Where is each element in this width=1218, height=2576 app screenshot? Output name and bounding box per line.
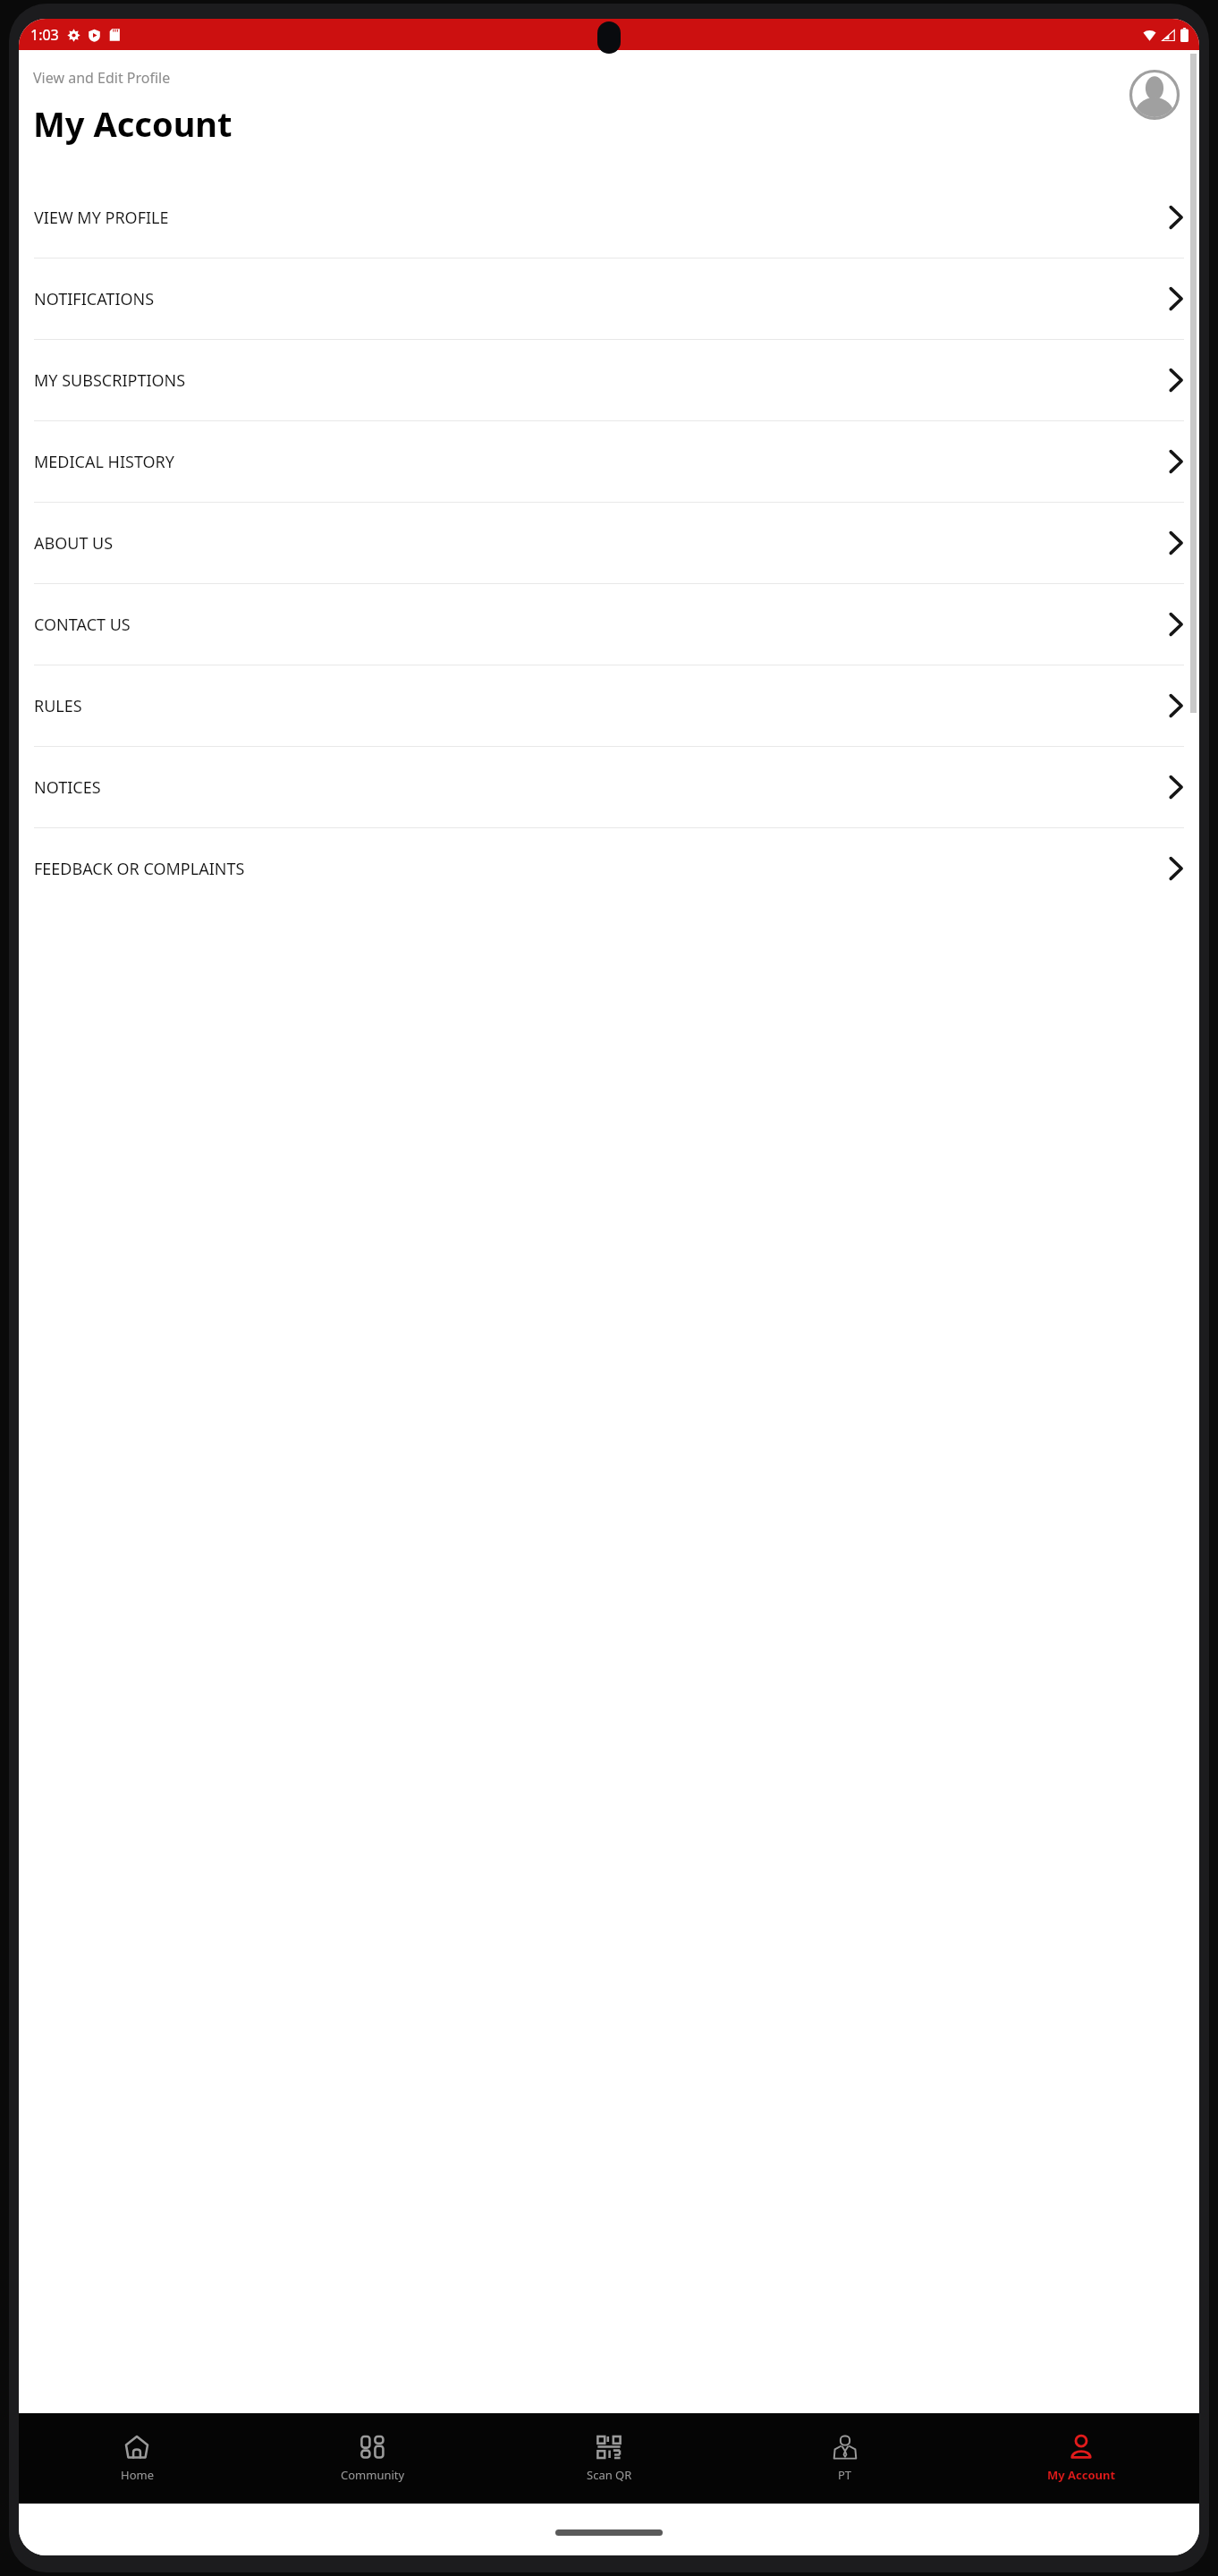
button[interactable]: Profile photo: [1129, 70, 1180, 120]
button[interactable]: ABOUT US: [19, 503, 1199, 584]
button[interactable]: Community: [255, 2413, 491, 2504]
button[interactable]: NOTIFICATIONS: [19, 258, 1199, 340]
button[interactable]: VIEW MY PROFILE: [19, 177, 1199, 258]
button[interactable]: MY SUBSCRIPTIONS: [19, 340, 1199, 421]
staticText: NOTICES: [34, 776, 1168, 799]
staticText: View and Edit Profile: [33, 68, 171, 88]
button[interactable]: My Account: [963, 2413, 1199, 2504]
staticText: 1:03: [30, 25, 59, 45]
button[interactable]: FEEDBACK OR COMPLAINTS: [19, 828, 1199, 909]
staticText: VIEW MY PROFILE: [34, 207, 1168, 229]
button[interactable]: Scan QR: [491, 2413, 727, 2504]
staticText: MY SUBSCRIPTIONS: [34, 369, 1168, 392]
staticText: MEDICAL HISTORY: [34, 451, 1168, 473]
staticText: My Account: [33, 100, 233, 147]
staticText: Scan QR: [587, 2467, 632, 2483]
staticText: NOTIFICATIONS: [34, 288, 1168, 310]
staticText: FEEDBACK OR COMPLAINTS: [34, 858, 1168, 880]
staticText: My Account: [1047, 2467, 1116, 2483]
staticText: Community: [341, 2467, 405, 2483]
staticText: Home: [121, 2467, 154, 2483]
button[interactable]: CONTACT US: [19, 584, 1199, 665]
button[interactable]: Home: [19, 2413, 255, 2504]
button[interactable]: PT: [727, 2413, 963, 2504]
button[interactable]: RULES: [19, 665, 1199, 747]
button[interactable]: NOTICES: [19, 747, 1199, 828]
staticText: PT: [838, 2467, 852, 2483]
button[interactable]: MEDICAL HISTORY: [19, 421, 1199, 503]
staticText: CONTACT US: [34, 614, 1168, 636]
staticText: RULES: [34, 695, 1168, 717]
staticText: ABOUT US: [34, 532, 1168, 555]
